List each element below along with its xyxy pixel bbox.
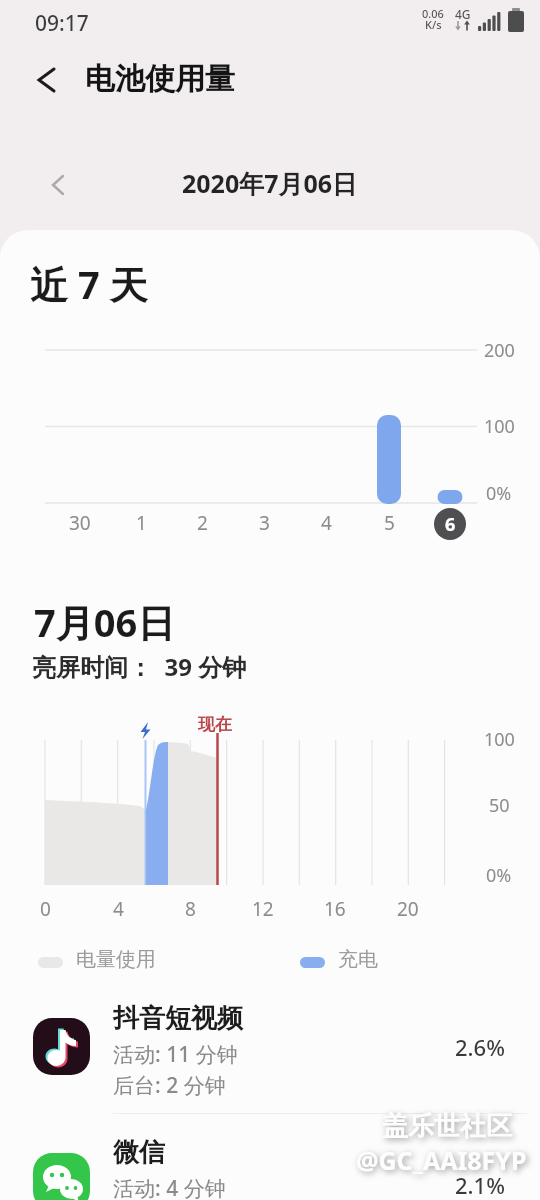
staticText: 50	[489, 793, 510, 818]
staticText: 电量使用	[76, 947, 156, 972]
staticText: K/s	[425, 17, 442, 32]
staticText: 充电	[338, 947, 378, 972]
staticText: 2	[197, 510, 208, 536]
staticText: 亮屏时间： 39 分钟	[32, 650, 247, 683]
staticText: 2.1%	[455, 1170, 505, 1200]
staticText: 3	[259, 510, 270, 536]
staticText: 4G	[455, 6, 471, 22]
staticText: 0.06	[422, 6, 444, 21]
staticText: 1	[136, 510, 147, 536]
staticText: 7月06日	[34, 596, 176, 648]
staticText: 0	[40, 896, 51, 922]
staticText: 电池使用量	[85, 60, 235, 98]
staticText: 100	[484, 727, 515, 752]
staticText: 200	[484, 338, 515, 363]
staticText: 0%	[486, 863, 512, 888]
staticText: 微信	[113, 1136, 165, 1169]
button[interactable]	[28, 60, 68, 100]
staticText: 5	[384, 510, 395, 536]
button[interactable]	[40, 165, 500, 205]
staticText: 盖乐世社区	[382, 1110, 512, 1143]
staticText: 抖音短视频	[113, 1002, 243, 1035]
staticText: @GC_AAI8FYP	[356, 1143, 527, 1177]
staticText: 4	[113, 896, 124, 922]
staticText: 09:17	[35, 9, 89, 38]
staticText: 活动: 4 分钟	[113, 1174, 226, 1200]
staticText: 8	[185, 896, 196, 922]
staticText: 16	[324, 896, 346, 922]
staticText: 30	[69, 510, 91, 536]
staticText: 12	[252, 896, 274, 922]
staticText: 现在	[198, 714, 232, 735]
staticText: 2.6%	[455, 1032, 505, 1062]
staticText: 活动: 11 分钟	[113, 1040, 238, 1069]
staticText: 后台: 2 分钟	[113, 1071, 226, 1100]
staticText: 近 7 天	[30, 258, 148, 310]
staticText: 6	[445, 512, 456, 537]
staticText: 4	[321, 510, 332, 536]
staticText: 0%	[486, 481, 512, 506]
staticText: 20	[397, 896, 419, 922]
button[interactable]	[20, 1000, 525, 1110]
staticText: 100	[484, 414, 515, 439]
button[interactable]	[20, 1130, 525, 1200]
staticText: 2020年7月06日	[182, 166, 358, 200]
